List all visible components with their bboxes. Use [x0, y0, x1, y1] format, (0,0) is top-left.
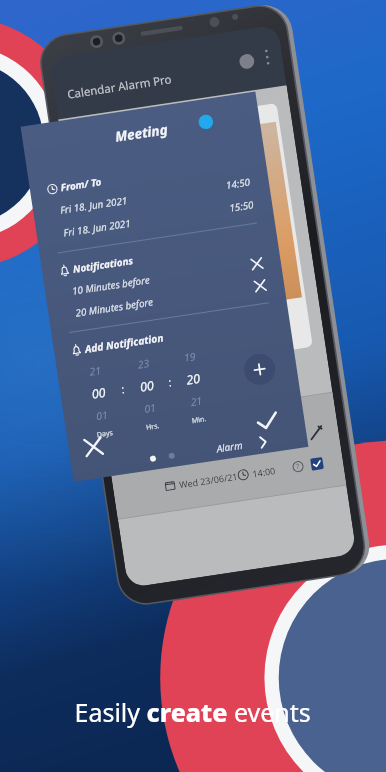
button[interactable]: Confirm: [185, 428, 239, 472]
button[interactable]: Cancel: [39, 426, 85, 470]
button[interactable]: Alarm type: [160, 396, 244, 428]
button[interactable]: Scrum Meeting event: [44, 505, 294, 551]
